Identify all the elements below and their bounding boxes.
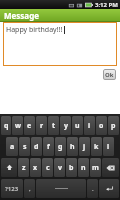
- button[interactable]: ?123: [1, 179, 23, 198]
- button[interactable]: Shift: [1, 158, 17, 177]
- staticText: w: [15, 121, 21, 131]
- button[interactable]: k: [91, 137, 102, 156]
- button[interactable]: v: [54, 158, 65, 177]
- button[interactable]: h: [67, 137, 78, 156]
- staticText: o: [99, 121, 104, 131]
- staticText: e: [27, 121, 32, 131]
- staticText: ,: [29, 185, 31, 193]
- button[interactable]: n: [78, 158, 89, 177]
- staticText: Happy birthday!!!: [6, 25, 63, 35]
- button[interactable]: y: [60, 116, 71, 135]
- staticText: f: [47, 142, 50, 152]
- staticText: 3:12 PM: [95, 1, 118, 9]
- button[interactable]: Backspace: [102, 158, 119, 177]
- staticText: n: [81, 163, 86, 173]
- button[interactable]: p: [108, 116, 119, 135]
- staticText: p: [111, 121, 116, 131]
- button[interactable]: .: [87, 179, 98, 198]
- button[interactable]: u: [72, 116, 83, 135]
- staticText: y: [64, 121, 68, 131]
- button[interactable]: g: [55, 137, 66, 156]
- button[interactable]: Enter: [99, 179, 119, 198]
- staticText: z: [22, 163, 26, 173]
- button[interactable]: x: [30, 158, 41, 177]
- staticText: .: [92, 185, 94, 193]
- button[interactable]: a: [6, 137, 18, 156]
- staticText: b: [69, 163, 74, 173]
- button[interactable]: Ok: [103, 69, 116, 80]
- staticText: x: [33, 163, 38, 173]
- button[interactable]: m: [90, 158, 101, 177]
- button[interactable]: f: [43, 137, 54, 156]
- staticText: r: [40, 121, 44, 131]
- button[interactable]: Happy birthday!!!: [3, 22, 117, 66]
- staticText: v: [58, 163, 62, 173]
- staticText: k: [94, 142, 99, 152]
- button[interactable]: s: [19, 137, 30, 156]
- staticText: a: [10, 142, 15, 152]
- button[interactable]: b: [66, 158, 77, 177]
- staticText: q: [4, 121, 9, 131]
- staticText: u: [75, 121, 80, 131]
- staticText: ?123: [5, 185, 19, 193]
- staticText: h: [70, 142, 75, 152]
- button[interactable]: r: [36, 116, 47, 135]
- staticText: t: [52, 121, 56, 131]
- staticText: d: [34, 142, 39, 152]
- button[interactable]: c: [42, 158, 53, 177]
- button[interactable]: ,: [24, 179, 35, 198]
- button[interactable]: o: [96, 116, 107, 135]
- button[interactable]: i: [84, 116, 95, 135]
- button[interactable]: z: [18, 158, 29, 177]
- button[interactable]: Space: [36, 179, 86, 198]
- button[interactable]: j: [79, 137, 90, 156]
- button[interactable]: e: [24, 116, 35, 135]
- button[interactable]: t: [48, 116, 59, 135]
- button[interactable]: d: [31, 137, 42, 156]
- staticText: g: [58, 142, 63, 152]
- button[interactable]: l: [103, 137, 114, 156]
- staticText: j: [83, 142, 86, 152]
- button[interactable]: q: [1, 116, 11, 135]
- staticText: s: [23, 142, 27, 152]
- staticText: l: [107, 142, 110, 152]
- staticText: Message: [4, 10, 39, 21]
- staticText: c: [46, 163, 50, 173]
- staticText: i: [88, 121, 91, 131]
- button[interactable]: w: [12, 116, 23, 135]
- staticText: m: [92, 163, 99, 173]
- staticText: Ok: [105, 71, 114, 79]
